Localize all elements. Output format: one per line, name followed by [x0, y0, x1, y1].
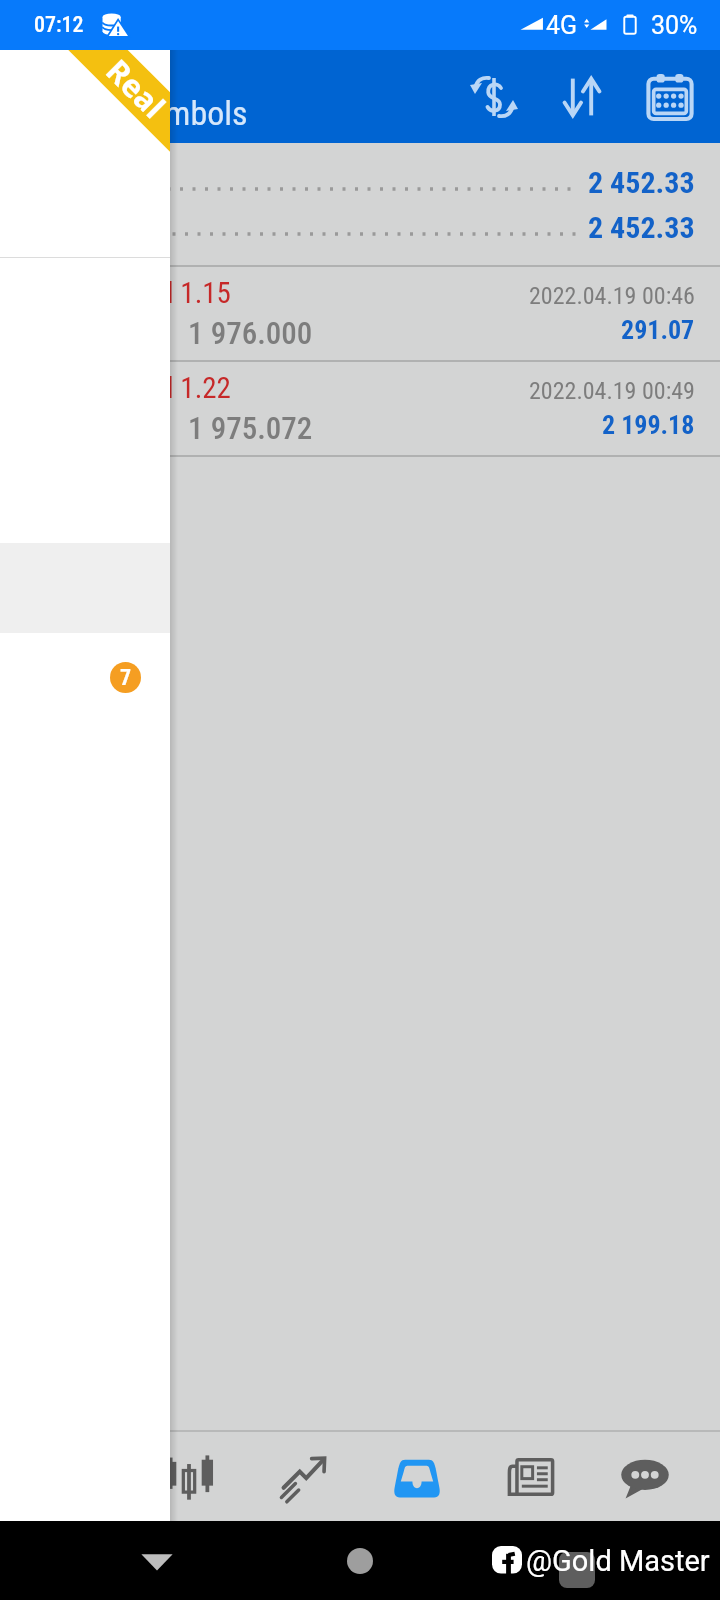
button[interactable]: Equity:	[0, 205, 720, 250]
button[interactable]: Home	[328, 1529, 392, 1593]
button[interactable]: Calendar	[626, 53, 714, 141]
staticText: 93.350 → 1 975.072	[26, 410, 313, 446]
staticText: 93.830 → 1 976.000	[26, 315, 313, 351]
button[interactable]: Chat	[588, 1432, 702, 1521]
button[interactable]: Currency conversion	[450, 53, 538, 141]
button[interactable]: Sort	[538, 53, 626, 141]
button[interactable]: Balance:	[0, 160, 720, 205]
staticText: 2 452.33	[588, 165, 695, 200]
staticText: 2022.04.19 00:49	[529, 377, 695, 405]
staticText: Real	[98, 50, 170, 127]
button[interactable]: Trade	[360, 1432, 474, 1521]
button[interactable]: XAUUSD, sell 1.22	[0, 362, 720, 455]
button[interactable]: Quotes	[132, 1432, 246, 1521]
staticText: 2022.04.19 00:46	[529, 282, 695, 310]
button[interactable]: News	[474, 1432, 588, 1521]
staticText: 7	[120, 665, 132, 691]
staticText: 30%	[651, 11, 698, 40]
staticText: 07:12	[34, 12, 84, 38]
button[interactable]: Charts	[246, 1432, 360, 1521]
staticText: 2 199.18	[602, 410, 695, 440]
button[interactable]: Back	[125, 1529, 189, 1593]
staticText: 291.07	[621, 315, 695, 345]
staticText: XAUUSD, sell 1.22	[26, 371, 231, 405]
staticText: XAUUSD, sell 1.15	[26, 276, 231, 310]
staticText: 2 452.33	[588, 210, 695, 245]
staticText: @Gold Master	[526, 1544, 710, 1578]
button[interactable]: XAUUSD, sell 1.15	[0, 267, 720, 360]
staticText: Symbols	[133, 93, 248, 133]
staticText: 4G	[546, 11, 578, 40]
